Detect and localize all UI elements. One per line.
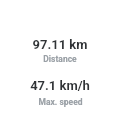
staticText: 97.11 km [32,37,88,52]
staticText: Distance [43,54,77,64]
staticText: 47.1 km/h [30,78,90,93]
staticText: Max. speed [38,97,83,107]
